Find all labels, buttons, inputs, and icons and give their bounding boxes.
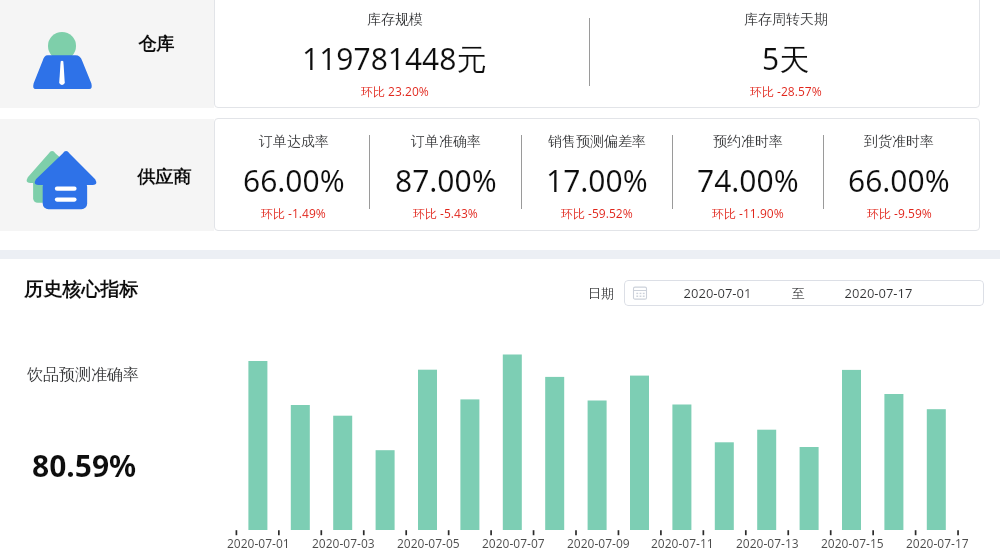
staticText: 80.59% xyxy=(32,445,137,486)
staticText: 2020-07-17 xyxy=(808,284,949,302)
staticText: 环比 -9.59% xyxy=(867,205,932,221)
staticText: 环比 -1.49% xyxy=(261,205,326,221)
staticText: 2020-07-07 xyxy=(482,535,545,551)
staticText: 订单达成率 xyxy=(259,133,329,151)
button[interactable]: 销售预测偏差率 xyxy=(522,118,672,231)
staticText: 环比 -11.90% xyxy=(712,205,784,221)
button[interactable]: 订单准确率 xyxy=(370,118,521,231)
staticText: 库存周转天期 xyxy=(744,11,828,29)
staticText: 日期 xyxy=(588,285,614,301)
staticText: 到货准时率 xyxy=(864,133,934,151)
staticText: 预约准时率 xyxy=(713,133,783,151)
button[interactable]: 供应商 xyxy=(0,119,214,231)
button[interactable]: 库存周转天期 xyxy=(590,0,966,108)
staticText: 2020-07-01 xyxy=(647,284,788,302)
staticText: 2020-07-11 xyxy=(651,535,714,551)
staticText: 17.00% xyxy=(546,160,648,201)
staticText: 仓库 xyxy=(138,33,174,56)
button[interactable]: Calendar xyxy=(624,280,984,306)
staticText: 2020-07-17 xyxy=(906,535,969,551)
staticText: 环比 -28.57% xyxy=(750,83,822,99)
button[interactable]: 到货准时率 xyxy=(824,118,974,231)
staticText: 环比 -59.52% xyxy=(561,205,633,221)
staticText: 2020-07-01 xyxy=(227,535,290,551)
staticText: 66.00% xyxy=(848,160,950,201)
staticText: 环比 -5.43% xyxy=(413,205,478,221)
other: 仓库 xyxy=(31,27,93,89)
staticText: 5天 xyxy=(762,38,810,79)
staticText: 至 xyxy=(788,285,808,301)
staticText: 66.00% xyxy=(243,160,345,201)
staticText: 销售预测偏差率 xyxy=(548,133,646,151)
staticText: 2020-07-03 xyxy=(312,535,375,551)
staticText: 2020-07-09 xyxy=(567,535,630,551)
staticText: 2020-07-13 xyxy=(736,535,799,551)
other: 供应商 xyxy=(24,146,100,212)
staticText: 饮品预测准确率 xyxy=(27,365,139,385)
staticText: 环比 23.20% xyxy=(361,83,429,99)
other: Calendar xyxy=(633,286,647,300)
button[interactable]: 库存规模 xyxy=(214,0,589,108)
staticText: 供应商 xyxy=(137,166,191,189)
button[interactable]: 预约准时率 xyxy=(673,118,823,231)
staticText: 订单准确率 xyxy=(411,133,481,151)
staticText: 87.00% xyxy=(395,160,497,201)
staticText: 2020-07-05 xyxy=(397,535,460,551)
staticText: 历史核心指标 xyxy=(24,278,138,302)
button[interactable]: 订单达成率 xyxy=(218,118,369,231)
staticText: 119781448元 xyxy=(302,38,487,79)
staticText: 2020-07-15 xyxy=(821,535,884,551)
button[interactable]: 仓库 xyxy=(0,0,214,108)
staticText: 库存规模 xyxy=(367,11,423,29)
staticText: 74.00% xyxy=(697,160,799,201)
